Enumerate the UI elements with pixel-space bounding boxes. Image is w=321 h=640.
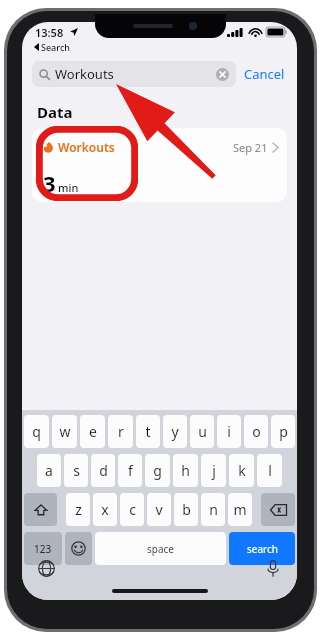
- staticText: p: [279, 422, 288, 441]
- button[interactable]: q: [24, 415, 49, 448]
- button[interactable]: Emoji keyboard: [65, 532, 92, 565]
- button[interactable]: search: [229, 532, 295, 565]
- button[interactable]: f: [118, 454, 142, 487]
- staticText: Search: [41, 41, 70, 53]
- button[interactable]: s: [64, 454, 88, 487]
- button[interactable]: Change keyboard language: [36, 558, 56, 578]
- staticText: a: [45, 461, 53, 480]
- button[interactable]: o: [244, 415, 268, 448]
- staticText: i: [227, 422, 231, 441]
- button[interactable]: r: [108, 415, 133, 448]
- staticText: min: [58, 180, 79, 195]
- staticText: m: [233, 500, 247, 519]
- staticText: s: [73, 461, 80, 480]
- button[interactable]: Clear text: [216, 68, 229, 81]
- button[interactable]: h: [173, 454, 198, 487]
- button[interactable]: space: [95, 532, 226, 565]
- staticText: w: [59, 422, 71, 441]
- staticText: d: [99, 461, 108, 480]
- staticText: h: [181, 461, 190, 480]
- button[interactable]: Dictation: [263, 558, 283, 578]
- button[interactable]: v: [147, 493, 171, 526]
- button[interactable]: m: [228, 493, 252, 526]
- staticText: v: [155, 500, 163, 519]
- button[interactable]: i: [217, 415, 241, 448]
- staticText: space: [147, 542, 174, 556]
- button[interactable]: c: [120, 493, 144, 526]
- button[interactable]: u: [190, 415, 214, 448]
- staticText: l: [268, 461, 272, 480]
- button[interactable]: b: [174, 493, 198, 526]
- staticText: t: [145, 422, 151, 441]
- button[interactable]: 123: [24, 532, 62, 565]
- button[interactable]: t: [136, 415, 160, 448]
- staticText: 3: [43, 168, 56, 198]
- button[interactable]: Cancel: [236, 62, 287, 86]
- button[interactable]: a: [37, 454, 61, 487]
- staticText: search: [247, 542, 278, 556]
- button[interactable]: Workouts: [32, 61, 236, 87]
- button[interactable]: k: [229, 454, 254, 487]
- button[interactable]: l: [257, 454, 282, 487]
- button[interactable]: d: [91, 454, 115, 487]
- button[interactable]: j: [201, 454, 226, 487]
- button[interactable]: Search: [32, 40, 72, 54]
- staticText: e: [89, 422, 97, 441]
- button[interactable]: n: [201, 493, 225, 526]
- staticText: r: [118, 422, 124, 441]
- staticText: 13:58: [35, 25, 64, 40]
- button[interactable]: Backspace: [261, 493, 295, 526]
- staticText: c: [129, 500, 136, 519]
- staticText: b: [182, 500, 191, 519]
- staticText: Workouts: [58, 139, 115, 155]
- staticText: q: [32, 422, 41, 441]
- staticText: x: [101, 500, 109, 519]
- staticText: Workouts: [55, 65, 114, 83]
- staticText: y: [171, 422, 179, 441]
- staticText: k: [238, 461, 246, 480]
- button[interactable]: e: [80, 415, 105, 448]
- staticText: n: [209, 500, 218, 519]
- staticText: 123: [34, 542, 52, 556]
- button[interactable]: g: [145, 454, 170, 487]
- button[interactable]: z: [66, 493, 90, 526]
- button[interactable]: y: [163, 415, 187, 448]
- button[interactable]: Workouts: [32, 128, 287, 202]
- button[interactable]: x: [93, 493, 117, 526]
- staticText: Cancel: [244, 65, 285, 83]
- button[interactable]: p: [271, 415, 295, 448]
- staticText: o: [252, 422, 261, 441]
- button[interactable]: Shift: [24, 493, 57, 526]
- staticText: Data: [37, 102, 73, 122]
- staticText: f: [128, 461, 133, 480]
- staticText: u: [198, 422, 207, 441]
- staticText: g: [153, 461, 162, 480]
- staticText: Sep 21: [233, 140, 268, 155]
- staticText: z: [75, 500, 82, 519]
- staticText: j: [212, 461, 216, 480]
- button[interactable]: w: [52, 415, 77, 448]
